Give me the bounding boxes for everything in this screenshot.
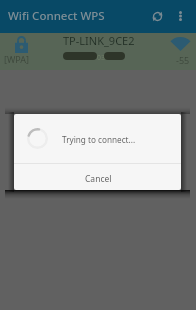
button[interactable]: More options (170, 6, 190, 26)
button[interactable]: Cancel (14, 164, 181, 190)
staticText: -55 (176, 54, 190, 66)
staticText: Trying to connect... (62, 134, 136, 145)
staticText: Wifi Connect WPS (8, 8, 105, 24)
staticText: Cancel (85, 173, 112, 185)
staticText: [WPA] (4, 53, 30, 65)
button[interactable]: Refresh (146, 5, 168, 27)
staticText: TP-LINK_9CE2 (63, 33, 135, 48)
staticText: 03 (97, 53, 106, 63)
button[interactable]: [WPA] (0, 33, 196, 70)
